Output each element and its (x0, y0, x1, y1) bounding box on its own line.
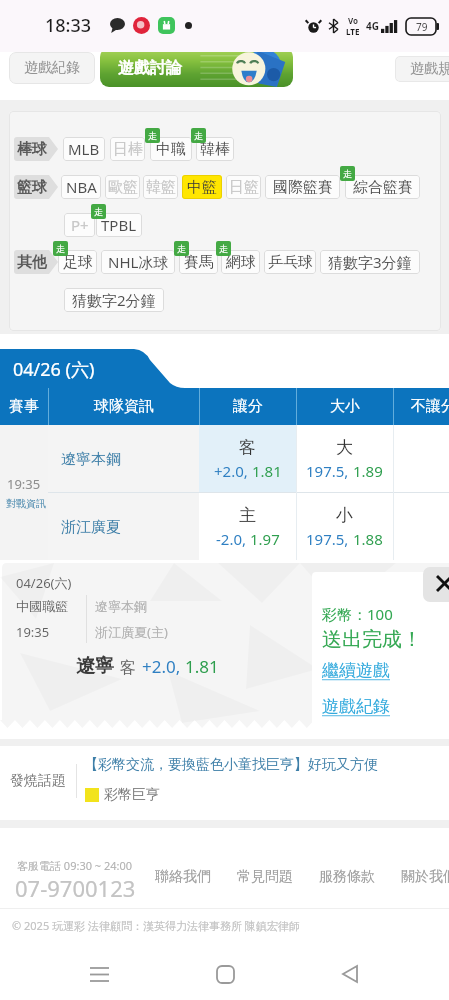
staticText: 綜合籃賽 (353, 178, 413, 197)
staticText: 國際籃賽 (273, 178, 333, 197)
button[interactable]: 小 (296, 493, 393, 560)
button[interactable]: MLB (63, 137, 105, 161)
staticText: 不讓分 (411, 397, 449, 416)
staticText: 遊戲紀錄 (24, 59, 80, 77)
button[interactable]: 足球 (58, 250, 97, 274)
button[interactable]: 國際籃賽 (265, 175, 340, 199)
staticText: 04/26 (六) (13, 357, 95, 382)
staticText: 彩幣巨亨 (104, 786, 160, 804)
button[interactable]: 【彩幣交流，要換藍色小童找巨亨】好玩又方便 (84, 756, 378, 774)
staticText: 猜數字2分鐘 (72, 290, 156, 310)
staticText: 走 (343, 168, 352, 179)
button[interactable]: 中籃 (182, 175, 222, 199)
staticText: 走 (219, 243, 228, 254)
button[interactable]: 遊戲討論 (100, 52, 293, 87)
staticText: 走 (177, 243, 186, 254)
button[interactable]: 服務條款 (319, 860, 379, 894)
button[interactable]: 遊戲紀錄 (9, 52, 95, 84)
staticText: 1.81 (252, 461, 282, 481)
button[interactable]: 對戰資訊 (6, 497, 46, 510)
button[interactable]: Close (423, 567, 449, 602)
staticText: 1.88 (353, 529, 383, 549)
staticText: Vo (348, 15, 359, 26)
staticText: 走 (148, 130, 157, 141)
staticText: NBA (66, 177, 97, 197)
button[interactable]: 歐籃 (105, 175, 140, 199)
staticText: P+ (71, 215, 89, 235)
staticText: 客 (120, 658, 136, 678)
staticText: 1.89 (353, 461, 383, 481)
button[interactable]: 猜數字2分鐘 (64, 288, 164, 312)
button[interactable]: 韓籃 (143, 175, 178, 199)
staticText: 常見問題 (237, 868, 293, 886)
button[interactable]: Recents (73, 948, 125, 1000)
button[interactable]: NBA (61, 175, 101, 199)
button[interactable]: 大 (296, 425, 393, 492)
staticText: 送出完成！ (322, 627, 422, 652)
staticText: 關於我們 (401, 868, 449, 886)
button[interactable]: 籃球 (14, 175, 58, 199)
staticText: 79 (416, 20, 428, 34)
staticText: +2.0, (214, 461, 252, 481)
staticText: LTE (346, 26, 360, 37)
button[interactable]: 常見問題 (237, 860, 297, 894)
staticText: 大小 (330, 397, 360, 416)
staticText: 4G (366, 19, 379, 33)
button[interactable]: 其他 (14, 250, 58, 274)
staticText: +2.0, (142, 655, 181, 678)
staticText: 賽事 (9, 397, 39, 416)
staticText: 07-9700123 (15, 873, 136, 903)
button[interactable]: Home (199, 948, 251, 1000)
staticText: -2.0, (216, 529, 250, 549)
staticText: 服務條款 (319, 868, 375, 886)
button[interactable]: P+ (64, 213, 95, 237)
button[interactable]: 遊戲規則 (395, 56, 449, 82)
staticText: 猜數字3分鐘 (328, 252, 412, 272)
staticText: 球隊資訊 (94, 397, 154, 416)
button[interactable]: 日棒 (110, 137, 145, 161)
staticText: 遼寧 (76, 654, 114, 678)
staticText: 中職 (156, 140, 186, 159)
button[interactable]: 網球 (221, 250, 260, 274)
button[interactable]: 主 (199, 493, 296, 560)
staticText: MLB (68, 139, 100, 159)
staticText: 04/26(六) (16, 574, 72, 592)
button[interactable]: NHL冰球 (101, 250, 175, 274)
staticText: 賽馬 (184, 253, 214, 272)
button[interactable]: 日籃 (226, 175, 261, 199)
staticText: 對戰資訊 (6, 497, 46, 510)
staticText: 遊戲規則 (410, 60, 449, 78)
staticText: 乒乓球 (268, 253, 313, 272)
button[interactable]: 關於我們 (401, 860, 449, 894)
staticText: TPBL (101, 215, 137, 235)
staticText: 大 (336, 437, 353, 458)
button[interactable]: 韓棒 (196, 137, 234, 161)
button[interactable]: 客 (199, 425, 296, 492)
staticText: 歐籃 (108, 178, 138, 197)
button[interactable]: TPBL (96, 213, 142, 237)
staticText: 足球 (63, 253, 93, 272)
staticText: 遊戲討論 (118, 58, 182, 78)
staticText: 197.5, (306, 461, 353, 481)
button[interactable]: 猜數字3分鐘 (320, 250, 420, 274)
staticText: 主 (239, 505, 256, 526)
staticText: © 2025 玩運彩 法律顧問：漢英得力法律事務所 陳鎮宏律師 (12, 918, 300, 933)
staticText: 彩幣：100 (322, 604, 393, 624)
button[interactable]: 聯絡我們 (155, 860, 215, 894)
staticText: 1.81 (185, 655, 219, 678)
button[interactable]: 中職 (150, 137, 192, 161)
staticText: 網球 (226, 253, 256, 272)
staticText: 浙江廣夏 (61, 518, 121, 537)
staticText: 棒球 (17, 140, 47, 159)
button[interactable]: 遊戲紀錄 (322, 696, 390, 717)
button[interactable]: 繼續遊戲 (322, 660, 390, 681)
staticText: NHL冰球 (108, 252, 169, 272)
staticText: 1.97 (250, 529, 280, 549)
button[interactable]: 乒乓球 (264, 250, 316, 274)
button[interactable]: 棒球 (14, 137, 58, 161)
staticText: 走 (194, 130, 203, 141)
staticText: 讓分 (233, 397, 263, 416)
button[interactable]: 賽馬 (179, 250, 218, 274)
button[interactable]: Back (324, 948, 376, 1000)
button[interactable]: 綜合籃賽 (345, 175, 420, 199)
